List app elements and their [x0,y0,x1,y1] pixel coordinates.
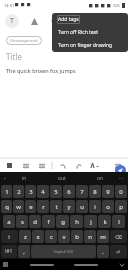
button[interactable]: 0 [115,185,127,198]
button[interactable]: Add tags [52,13,128,26]
staticText: 2 [17,188,21,196]
button[interactable]: s [16,215,28,228]
staticText: h [75,218,79,226]
staticText: a [7,218,11,226]
button[interactable]: x [32,230,44,243]
button[interactable]: u [76,200,88,213]
staticText: 14:51 [4,3,15,8]
button[interactable]: n [84,230,96,243]
staticText: b [75,233,79,241]
button[interactable]: , [18,245,30,258]
button[interactable]: Hide keyboard [119,262,125,268]
staticText: c [50,233,53,241]
staticText: out [58,175,66,182]
button[interactable]: ⋯ [119,175,124,181]
staticText: p [119,203,123,211]
button[interactable]: . [97,245,109,258]
button[interactable]: More [112,160,123,171]
button[interactable]: Text format [5,14,19,28]
staticText: n [88,233,92,241]
button[interactable]: b [71,230,83,243]
button[interactable]: English (US) [31,245,96,258]
button[interactable]: f [42,215,55,228]
button[interactable]: Attach [47,14,61,28]
button[interactable]: 5 [50,185,62,198]
button[interactable]: l [112,215,125,228]
button[interactable]: 8 [89,185,101,198]
button[interactable]: m [97,230,109,243]
staticText: English (US) [54,249,74,254]
button[interactable]: 3 [25,185,36,198]
staticText: 6 [67,188,71,196]
staticText: k [103,218,107,226]
button[interactable]: Style [4,160,15,171]
staticText: T [10,16,14,26]
button[interactable]: i [89,200,101,213]
button[interactable]: ‹ [4,175,6,182]
button[interactable]: r [37,200,49,213]
button[interactable]: in [6,172,43,184]
button[interactable]: d [29,215,41,228]
staticText: 9 [106,188,110,196]
button[interactable]: 6 [63,185,75,198]
button[interactable]: q [1,200,12,213]
button[interactable]: 7 [76,185,88,198]
button[interactable]: Redo [73,160,84,171]
staticText: in [22,175,27,182]
button[interactable]: e [25,200,36,213]
staticText: q [5,203,9,211]
button[interactable]: Text size [89,160,100,171]
button[interactable]: k [98,215,111,228]
button[interactable]: Shift [1,230,18,243]
button[interactable]: 4 [37,185,49,198]
staticText: v [62,233,66,241]
button[interactable]: Send [115,165,126,176]
staticText: e [29,203,33,211]
staticText: t [55,203,58,211]
staticText: z [24,233,27,241]
staticText: ⏎ [116,249,121,255]
staticText: m [100,233,106,241]
button[interactable]: Uncategorized [10,38,38,43]
button[interactable]: Undo [57,160,68,171]
button[interactable]: 9 [102,185,114,198]
staticText: 3 [29,188,33,196]
button[interactable]: Turn on finger drawing [52,39,128,52]
button[interactable]: Align left [20,160,31,171]
staticText: , [23,248,25,256]
button[interactable]: y [63,200,75,213]
staticText: The quick brown fox jumps [6,67,76,74]
button[interactable]: Backspace [110,230,127,243]
staticText: y [67,203,71,211]
button[interactable]: on [81,172,119,184]
button[interactable]: c [45,230,57,243]
staticText: j [90,218,92,226]
button[interactable]: a [3,215,15,228]
button[interactable]: List [36,160,47,171]
button[interactable]: h [70,215,83,228]
button[interactable]: z [19,230,31,243]
staticText: 4 [41,188,45,196]
button[interactable]: out [43,172,81,184]
button[interactable]: p [115,200,127,213]
button[interactable]: 2 [13,185,24,198]
button[interactable]: j [84,215,97,228]
button[interactable]: o [102,200,114,213]
button[interactable]: Draw [27,14,41,28]
staticText: w [16,203,21,211]
button[interactable]: g [56,215,69,228]
button[interactable]: t [50,200,62,213]
staticText: r [42,203,45,211]
button[interactable]: Enter [110,245,127,258]
staticText: Add tags [58,16,79,23]
button[interactable]: 1 [1,185,12,198]
button[interactable]: Symbols [1,245,17,258]
staticText: 7 [80,188,84,196]
button[interactable]: v [58,230,70,243]
staticText: 1 [5,188,9,196]
button[interactable]: w [13,200,24,213]
button[interactable]: Turn off Rich text [52,26,128,39]
staticText: Title [6,51,22,62]
staticText: Turn off Rich text [58,29,99,36]
